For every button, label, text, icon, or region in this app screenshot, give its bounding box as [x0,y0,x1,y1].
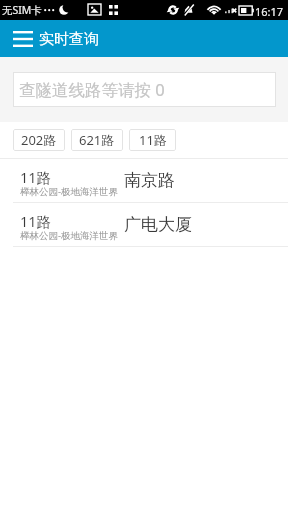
button[interactable]: 11路 [129,129,176,151]
staticText: 广电大厦 [124,214,192,235]
staticText: 11路 [20,211,52,231]
staticText: 南京路 [124,170,175,191]
staticText: 榉林公园-极地海洋世界 [20,185,119,198]
staticText: 202路 [21,131,57,149]
button[interactable]: 202路 [13,129,65,151]
button[interactable]: Open navigation menu [11,27,35,51]
button[interactable]: 621路 [71,129,123,151]
staticText: 无SIM卡 [2,3,42,17]
button[interactable]: 查隧道线路等请按 0 [13,72,276,107]
staticText: 实时查询 [39,30,99,49]
staticText: 11路 [139,131,167,149]
staticText: 11路 [20,167,52,187]
button[interactable]: 11路 [0,159,288,202]
button[interactable]: 11路 [0,203,288,246]
staticText: 查隧道线路等请按 0 [19,78,165,101]
staticText: 榉林公园-极地海洋世界 [20,229,119,242]
staticText: 16:17 [255,4,284,19]
staticText: 621路 [79,131,115,149]
